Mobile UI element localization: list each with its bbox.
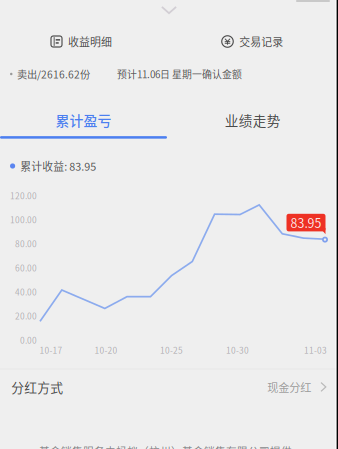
staticText: 20.00 — [15, 310, 37, 322]
staticText: 40.00 — [15, 286, 37, 298]
staticText: 10-25 — [160, 344, 183, 356]
button[interactable]: 分红方式 — [0, 368, 338, 406]
staticText: 10-17 — [39, 344, 62, 356]
staticText: 80.00 — [15, 238, 37, 250]
staticText: 累计收益: 83.95 — [20, 158, 96, 174]
staticText: 交易记录 — [239, 34, 283, 49]
staticText: 预计11.06日 星期一确认金额 — [117, 67, 242, 81]
staticText: 60.00 — [15, 262, 37, 274]
staticText: 收益明细 — [68, 34, 112, 49]
staticText: 11-03 — [304, 344, 327, 356]
staticText: 0.00 — [20, 334, 37, 346]
staticText: 120.00 — [10, 189, 37, 202]
staticText: 83.95 — [290, 214, 321, 232]
staticText: 卖出/2616.62份 — [17, 67, 90, 81]
staticText: 业绩走势 — [225, 110, 281, 130]
button[interactable]: 累计盈亏 — [0, 101, 167, 139]
staticText: 100.00 — [10, 213, 37, 226]
staticText: 分红方式 — [11, 378, 63, 396]
staticText: 10-20 — [94, 344, 117, 356]
staticText: 10-30 — [226, 344, 249, 356]
staticText: 累计盈亏 — [55, 110, 111, 130]
button[interactable]: 业绩走势 — [169, 101, 336, 139]
staticText: 现金分红 — [267, 379, 311, 395]
button[interactable]: 交易记录 — [172, 26, 332, 56]
button[interactable]: 收益明细 — [1, 26, 161, 56]
staticText: 基金销售服务由蚂蚁（杭州）基金销售有限公司提供 — [39, 443, 292, 449]
